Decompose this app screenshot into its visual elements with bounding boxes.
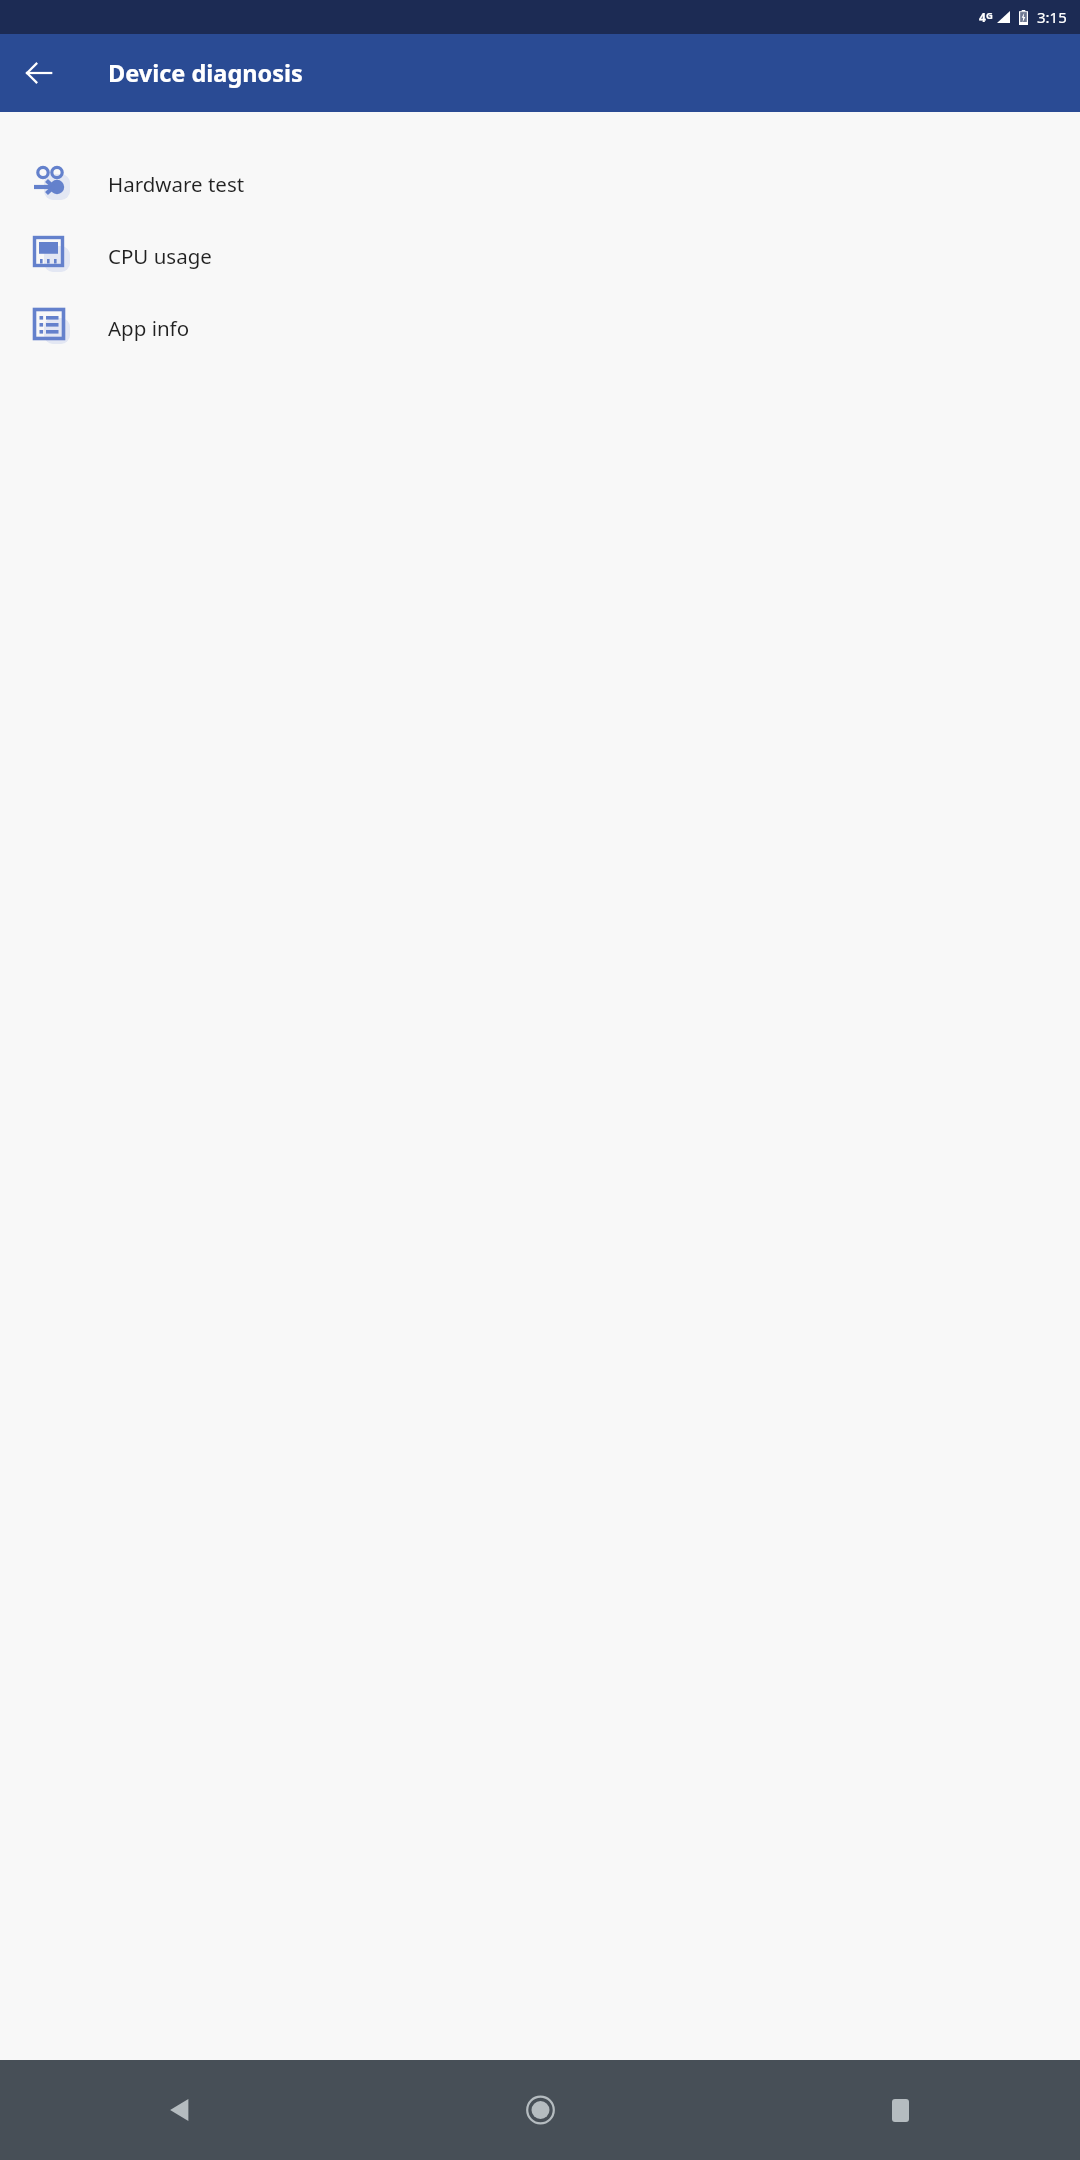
staticText: App info bbox=[108, 314, 190, 342]
staticText: CPU usage bbox=[108, 242, 212, 270]
staticText: G bbox=[986, 9, 993, 22]
button[interactable]: Back bbox=[0, 2060, 360, 2160]
button[interactable]: CPU usage bbox=[0, 220, 1080, 292]
button[interactable]: Recent apps bbox=[720, 2060, 1080, 2160]
button[interactable]: App info bbox=[0, 292, 1080, 364]
button[interactable]: Back bbox=[14, 48, 64, 98]
staticText: 3:15 bbox=[1037, 7, 1067, 27]
staticText: Hardware test bbox=[108, 170, 245, 198]
button[interactable]: Home bbox=[360, 2060, 720, 2160]
staticText: 4 bbox=[979, 9, 986, 25]
staticText: Device diagnosis bbox=[108, 57, 303, 89]
button[interactable]: Hardware test bbox=[0, 148, 1080, 220]
